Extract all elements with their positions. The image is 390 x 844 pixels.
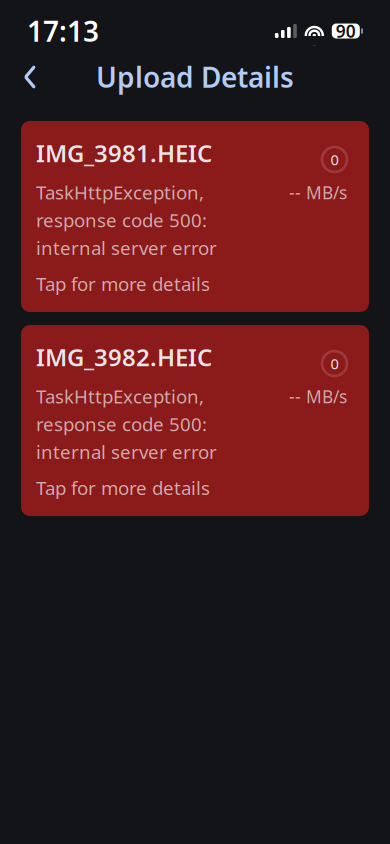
- staticText: -- MB/s: [289, 385, 347, 408]
- staticText: TaskHttpException, response code 500: in…: [36, 384, 217, 464]
- staticText: TaskHttpException, response code 500: in…: [36, 180, 217, 260]
- staticText: Tap for more details: [36, 271, 210, 296]
- staticText: 0: [330, 150, 338, 169]
- staticText: IMG_3981.HEIC: [36, 137, 212, 169]
- staticText: IMG_3982.HEIC: [36, 341, 212, 373]
- staticText: Tap for more details: [36, 475, 210, 500]
- staticText: 17:13: [27, 12, 99, 50]
- staticText: -- MB/s: [289, 181, 347, 204]
- staticText: Upload Details: [96, 58, 294, 96]
- staticText: 0: [330, 354, 338, 373]
- button[interactable]: IMG_3982.HEIC: [21, 325, 369, 516]
- button[interactable]: IMG_3981.HEIC: [21, 121, 369, 312]
- staticText: 90: [336, 19, 356, 42]
- button[interactable]: Back: [8, 55, 52, 99]
